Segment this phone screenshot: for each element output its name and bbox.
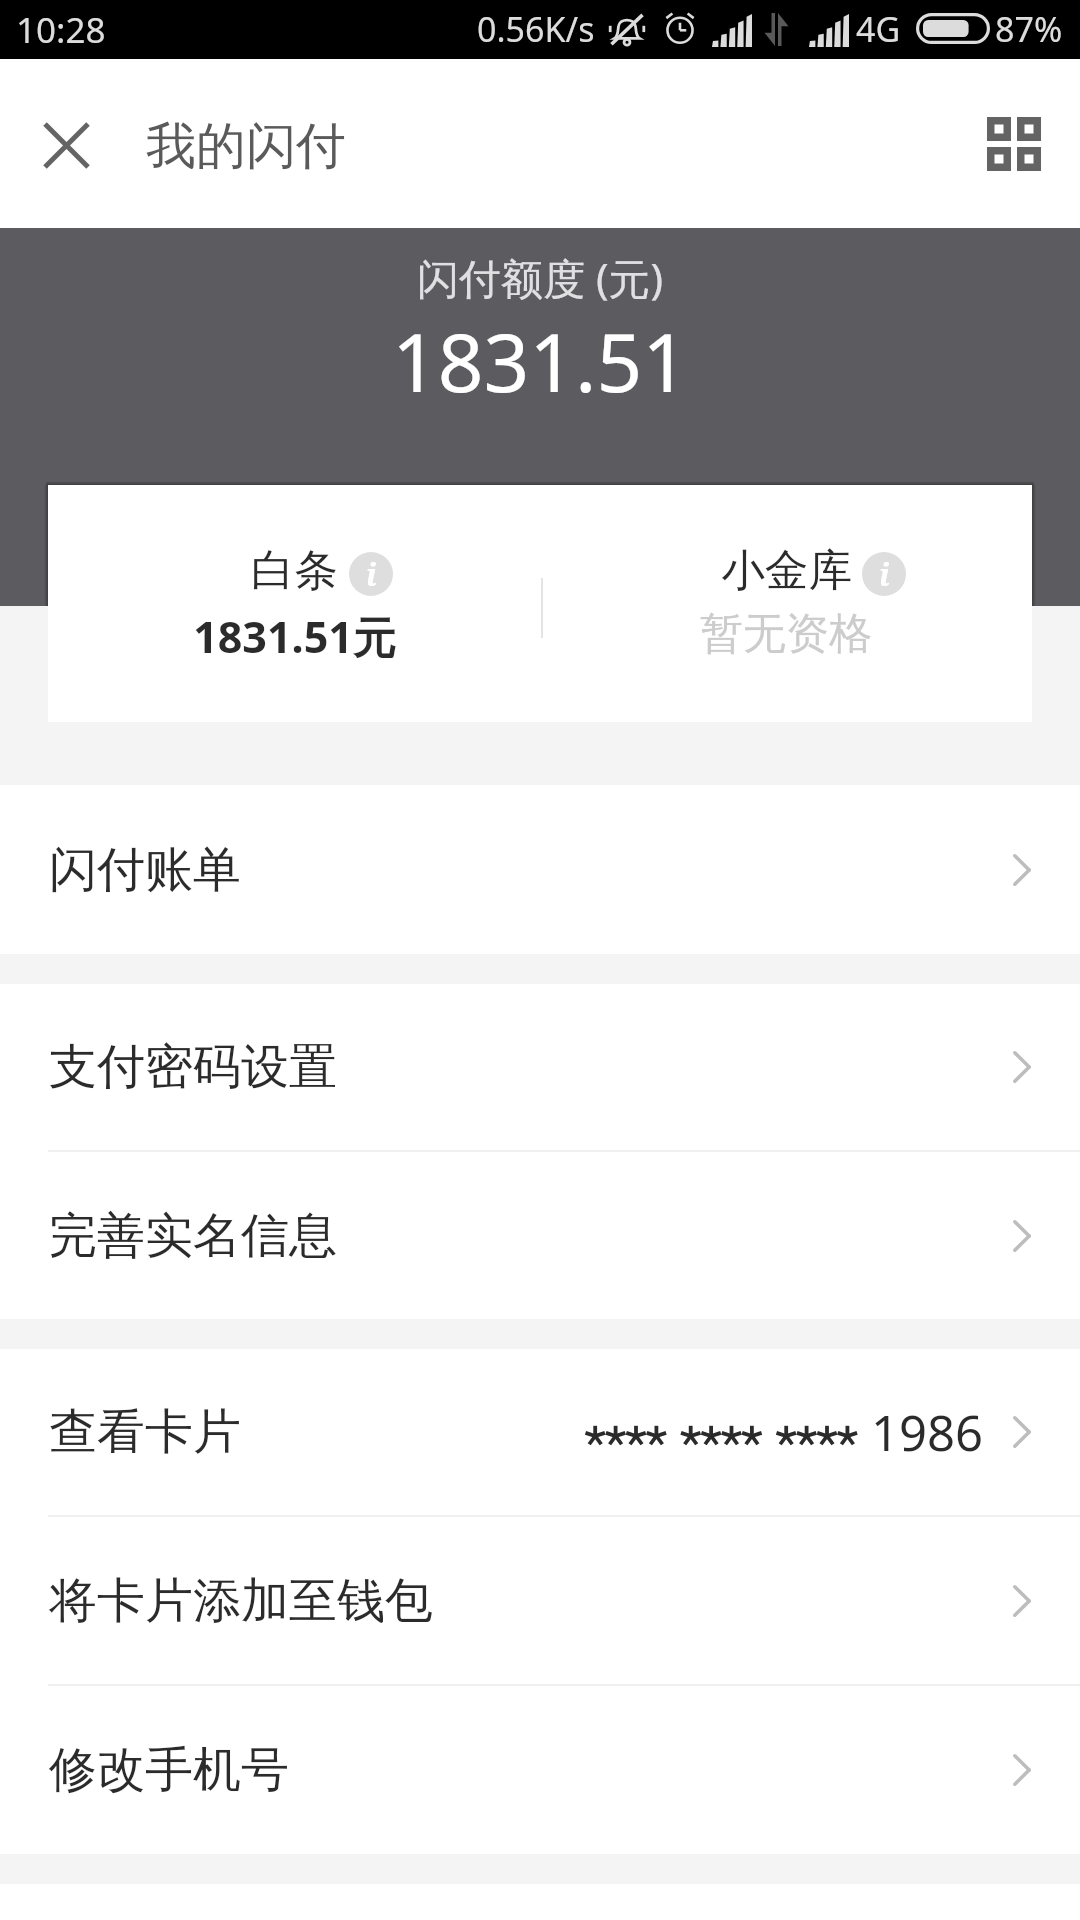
staticText: 4G bbox=[856, 6, 901, 52]
staticText: 1831.51 bbox=[392, 306, 688, 415]
button[interactable]: 将卡片添加至钱包 bbox=[0, 1517, 1080, 1684]
staticText: 10:28 bbox=[16, 6, 106, 54]
button[interactable]: Menu bbox=[970, 100, 1058, 188]
staticText: 0.56K/s bbox=[477, 6, 595, 52]
staticText: 白条 bbox=[251, 543, 338, 598]
button[interactable]: 小金库 bbox=[540, 485, 1032, 722]
button[interactable]: 闪付账单 bbox=[0, 785, 1080, 954]
button[interactable]: 完善实名信息 bbox=[0, 1152, 1080, 1319]
staticText: 完善实名信息 bbox=[49, 1206, 337, 1266]
button[interactable]: 支付密码设置 bbox=[0, 984, 1080, 1150]
staticText: 支付密码设置 bbox=[49, 1037, 337, 1097]
button[interactable]: 修改手机号 bbox=[0, 1686, 1080, 1854]
button[interactable]: Info bbox=[349, 552, 393, 596]
staticText: 将卡片添加至钱包 bbox=[49, 1571, 433, 1631]
button[interactable]: 白条 bbox=[48, 485, 540, 722]
staticText: 我的闪付 bbox=[146, 115, 346, 178]
staticText: 87% bbox=[995, 6, 1063, 52]
staticText: 查看卡片 bbox=[49, 1402, 241, 1462]
button[interactable]: 查看卡片 bbox=[0, 1349, 1080, 1515]
button[interactable]: Close bbox=[20, 98, 112, 190]
staticText: 闪付额度 (元) bbox=[417, 249, 664, 306]
staticText: 闪付账单 bbox=[49, 840, 241, 900]
staticText: 暂无资格 bbox=[700, 607, 872, 661]
staticText: i bbox=[879, 554, 890, 595]
staticText: 1986 bbox=[871, 1399, 984, 1466]
staticText: 修改手机号 bbox=[49, 1740, 289, 1800]
staticText: 1831.51元 bbox=[193, 607, 396, 666]
button[interactable]: Info bbox=[862, 552, 906, 596]
staticText: 小金库 bbox=[721, 543, 852, 598]
staticText: i bbox=[366, 554, 377, 595]
